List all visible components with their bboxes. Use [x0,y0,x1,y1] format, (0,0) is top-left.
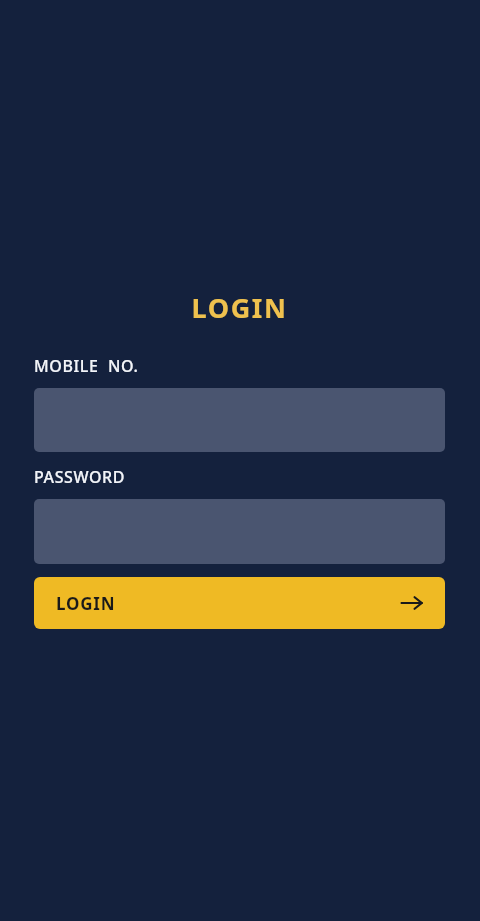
staticText: PASSWORD [34,466,126,488]
button[interactable]: LOGIN [34,577,445,629]
staticText: LOGIN [56,592,116,615]
staticText: MOBILE NO. [34,355,139,377]
staticText: LOGIN [34,289,445,326]
